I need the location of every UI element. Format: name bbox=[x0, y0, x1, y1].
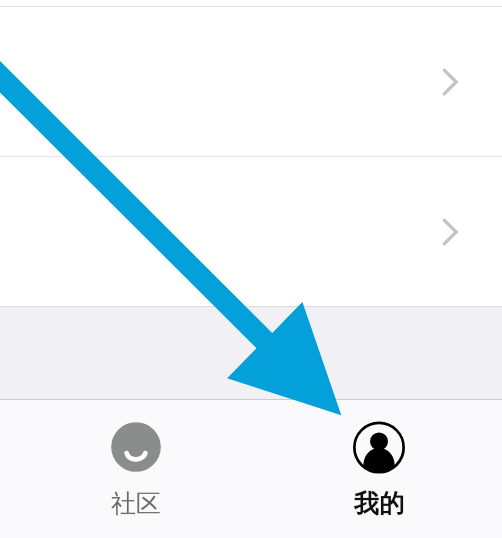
other: Open bbox=[441, 217, 459, 247]
staticText: 社区 bbox=[76, 488, 196, 519]
button[interactable]: 社区 bbox=[76, 414, 196, 526]
other: Open bbox=[441, 67, 459, 97]
button[interactable]: Open bbox=[0, 7, 502, 156]
button[interactable]: 我的 bbox=[319, 414, 439, 526]
button[interactable]: Open bbox=[0, 157, 502, 306]
staticText: 我的 bbox=[319, 488, 439, 519]
